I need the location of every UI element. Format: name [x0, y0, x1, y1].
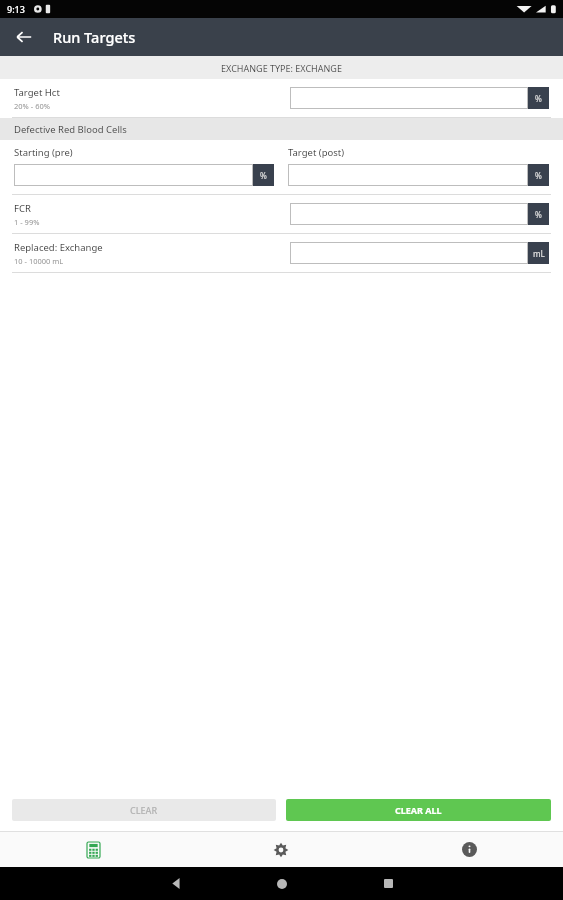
staticText: %	[260, 170, 267, 181]
staticText: Starting (pre)	[14, 146, 274, 159]
staticText: Replaced: Exchange	[14, 241, 103, 254]
button[interactable]: Back	[8, 21, 40, 53]
staticText: mL	[533, 248, 545, 259]
staticText: EXCHANGE TYPE: EXCHANGE	[221, 62, 342, 74]
staticText: Run Targets	[53, 27, 136, 47]
button[interactable]: Settings	[187, 832, 375, 867]
button[interactable]: FCR	[0, 195, 563, 233]
staticText: FCR	[14, 202, 31, 215]
staticText: Target Hct	[14, 86, 60, 99]
button[interactable]: Target Hct	[0, 79, 563, 117]
staticText: %	[535, 209, 542, 220]
button[interactable]: Calculator	[0, 832, 187, 867]
staticText: 1 - 99%	[14, 217, 40, 227]
button[interactable]: Back	[123, 867, 229, 900]
button[interactable]: %	[290, 87, 549, 109]
button[interactable]: Recents	[335, 867, 441, 900]
button[interactable]: Info	[375, 832, 563, 867]
staticText: %	[535, 93, 542, 104]
staticText: 9:13	[7, 3, 25, 15]
staticText: Target (post)	[288, 146, 549, 159]
staticText: Defective Red Blood Cells	[14, 123, 127, 136]
staticText: CLEAR ALL	[395, 804, 442, 816]
button[interactable]: Replaced: Exchange	[0, 234, 563, 272]
button[interactable]: CLEAR	[12, 799, 276, 821]
staticText: %	[535, 170, 542, 181]
button[interactable]: Home	[229, 867, 335, 900]
button[interactable]: mL	[290, 242, 549, 264]
staticText: 20% - 60%	[14, 101, 50, 111]
button[interactable]: %	[290, 203, 549, 225]
staticText: 10 - 10000 mL	[14, 256, 64, 266]
button[interactable]: %	[288, 164, 549, 186]
button[interactable]: CLEAR ALL	[286, 799, 551, 821]
button[interactable]: %	[14, 164, 274, 186]
staticText: CLEAR	[130, 804, 158, 816]
